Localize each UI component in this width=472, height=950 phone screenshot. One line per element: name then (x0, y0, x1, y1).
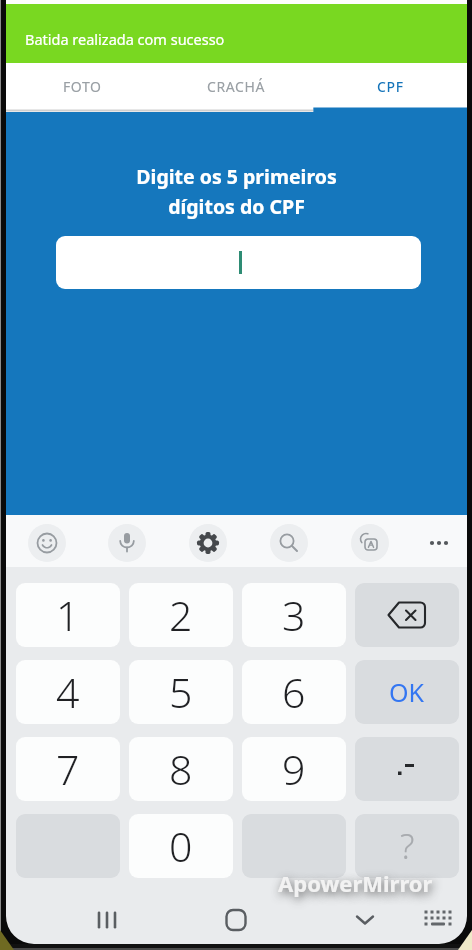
staticText: 1 (56, 587, 80, 643)
button[interactable]: 4 (16, 660, 120, 724)
button[interactable]: OK (355, 660, 459, 724)
staticText: 4 (56, 664, 80, 720)
staticText: CPF (377, 77, 404, 96)
staticText: OK (389, 675, 425, 709)
button[interactable] (85, 898, 129, 942)
button[interactable]: 1 (16, 583, 120, 647)
staticText: 8 (169, 741, 193, 797)
button[interactable]: CRACHÁ (159, 63, 313, 109)
staticText: 5 (169, 664, 193, 720)
button[interactable] (28, 524, 66, 562)
button[interactable] (56, 236, 421, 289)
button[interactable] (108, 524, 146, 562)
staticText: 2 (169, 587, 193, 643)
button[interactable]: 8 (129, 737, 233, 801)
staticText: 9 (282, 741, 306, 797)
button[interactable]: CPF (313, 63, 467, 109)
button[interactable] (420, 524, 458, 562)
button[interactable] (351, 524, 389, 562)
button[interactable]: FOTO (6, 63, 159, 109)
staticText: Digite os 5 primeiros dígitos do CPF (136, 163, 337, 219)
button[interactable]: 2 (129, 583, 233, 647)
staticText: CRACHÁ (207, 77, 265, 96)
staticText: ApowerMirror (278, 868, 433, 898)
staticText: 7 (56, 741, 80, 797)
button[interactable] (214, 898, 258, 942)
staticText: Batida realizada com sucesso (25, 29, 225, 49)
staticText: 0 (169, 818, 193, 874)
button[interactable] (189, 524, 227, 562)
button[interactable] (355, 737, 459, 801)
button[interactable] (270, 524, 308, 562)
button[interactable]: 0 (129, 814, 233, 878)
button[interactable]: ? (355, 814, 459, 878)
button[interactable] (355, 583, 459, 647)
button[interactable]: 3 (242, 583, 346, 647)
staticText: 3 (282, 587, 306, 643)
staticText: 6 (282, 664, 306, 720)
staticText: FOTO (63, 77, 102, 96)
button[interactable]: 9 (242, 737, 346, 801)
button[interactable]: 7 (16, 737, 120, 801)
button[interactable]: 5 (129, 660, 233, 724)
staticText: ? (400, 823, 415, 869)
button[interactable] (416, 898, 460, 942)
button[interactable] (343, 898, 387, 942)
button[interactable]: 6 (242, 660, 346, 724)
